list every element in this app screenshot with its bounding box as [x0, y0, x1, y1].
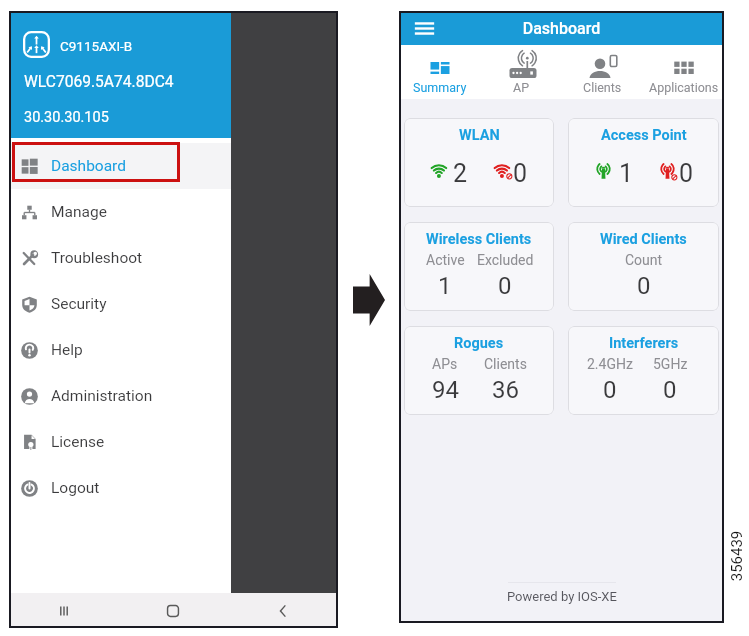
staticText: Wired Clients — [600, 231, 687, 248]
staticText: Clients — [583, 80, 622, 95]
staticText: Applications — [649, 80, 719, 95]
button[interactable]: Dashboard — [9, 143, 231, 189]
button[interactable]: Troubleshoot — [9, 235, 231, 281]
staticText: Wireless Clients — [426, 231, 532, 248]
staticText: AP — [513, 80, 530, 95]
button[interactable]: AP — [481, 45, 562, 99]
staticText: C9115AXI-B — [60, 38, 133, 54]
staticText: Troubleshoot — [51, 249, 143, 267]
staticText: 0 — [637, 272, 651, 300]
staticText: Count — [625, 252, 663, 268]
button[interactable]: Recents — [9, 593, 118, 628]
staticText: License — [51, 433, 105, 451]
staticText: Manage — [51, 203, 107, 221]
staticText: Excluded — [477, 252, 534, 268]
staticText: Active — [426, 252, 465, 268]
button[interactable]: License — [9, 419, 231, 465]
staticText: 30.30.30.105 — [24, 109, 109, 126]
staticText: 1 — [619, 159, 634, 188]
staticText: 0 — [498, 272, 512, 300]
staticText: 0 — [513, 159, 528, 188]
staticText: Security — [51, 295, 107, 313]
staticText: 1 — [438, 272, 452, 300]
staticText: Administration — [51, 387, 153, 405]
staticText: Clients — [484, 356, 527, 372]
button[interactable]: Security — [9, 281, 231, 327]
button[interactable]: Rogues — [404, 326, 554, 415]
staticText: Dashboard — [51, 157, 126, 175]
button[interactable]: Back — [228, 593, 338, 628]
button[interactable]: Interferers — [568, 326, 719, 415]
staticText: Interferers — [609, 335, 679, 352]
staticText: Dashboard — [399, 19, 724, 38]
staticText: Access Point — [601, 127, 687, 144]
staticText: 36 — [492, 376, 519, 404]
staticText: 2.4GHz — [587, 356, 633, 372]
staticText: 356439 — [728, 521, 746, 591]
button[interactable]: Logout — [9, 465, 231, 511]
staticText: 0 — [663, 376, 677, 404]
button[interactable]: Wireless Clients — [404, 222, 554, 311]
button[interactable]: Access Point — [568, 118, 719, 207]
button[interactable]: Wired Clients — [568, 222, 719, 311]
staticText: Powered by IOS-XE — [507, 589, 617, 604]
button[interactable]: Applications — [643, 45, 724, 99]
staticText: 0 — [603, 376, 617, 404]
staticText: 2 — [453, 159, 468, 188]
button[interactable]: Open navigation menu — [405, 11, 443, 45]
button[interactable]: Administration — [9, 373, 231, 419]
button[interactable]: WLAN — [404, 118, 554, 207]
staticText: APs — [432, 356, 458, 372]
button[interactable]: Summary — [399, 45, 481, 99]
staticText: Rogues — [454, 335, 504, 352]
button[interactable]: Manage — [9, 189, 231, 235]
button[interactable]: Home — [118, 593, 228, 628]
staticText: 5GHz — [653, 356, 688, 372]
staticText: Help — [51, 341, 83, 359]
button[interactable]: Clients — [562, 45, 643, 99]
staticText: 94 — [432, 376, 459, 404]
staticText: Logout — [51, 479, 100, 497]
staticText: WLC7069.5A74.8DC4 — [24, 73, 174, 91]
button[interactable]: Help — [9, 327, 231, 373]
staticText: WLAN — [459, 127, 500, 144]
staticText: 0 — [679, 159, 694, 188]
staticText: Summary — [413, 80, 467, 95]
